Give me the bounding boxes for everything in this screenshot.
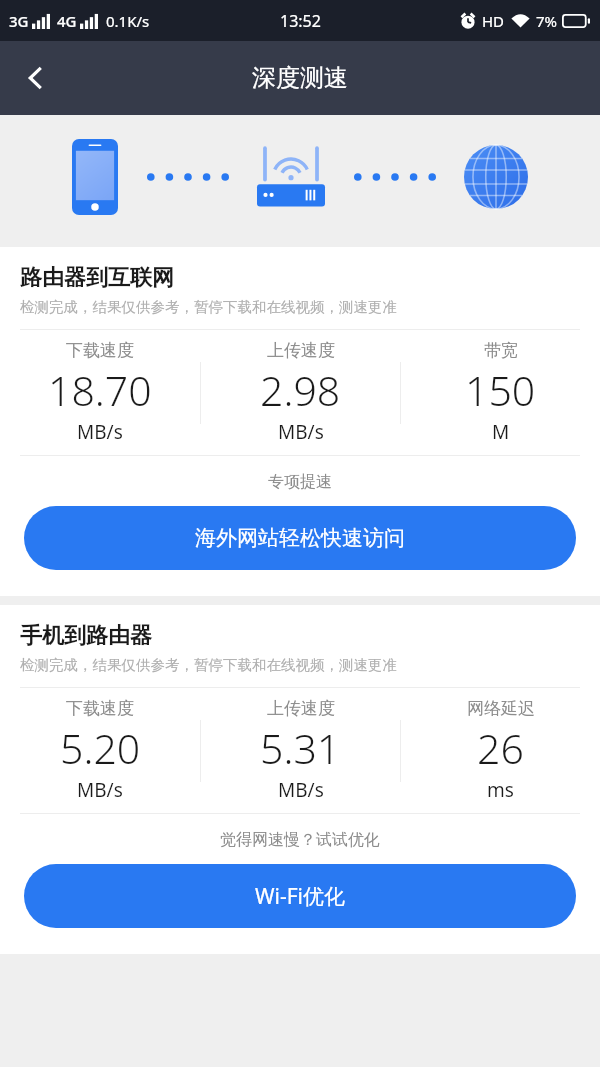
staticText: 下载速度 <box>66 698 134 719</box>
staticText: 5.20 <box>60 720 141 776</box>
staticText: MB/s <box>77 777 123 803</box>
button[interactable]: 海外网站轻松快速访问 <box>24 506 576 570</box>
staticText: 4G <box>57 11 77 31</box>
staticText: HD <box>482 11 505 31</box>
staticText: 7% <box>536 11 558 31</box>
staticText: 0.1K/s <box>106 11 150 31</box>
staticText: Wi-Fi优化 <box>255 882 346 911</box>
staticText: 26 <box>477 720 524 776</box>
staticText: 觉得网速慢？试试优化 <box>0 830 600 850</box>
staticText: 检测完成，结果仅供参考，暂停下载和在线视频，测速更准 <box>20 656 397 674</box>
staticText: 路由器到互联网 <box>20 264 174 292</box>
staticText: 5.31 <box>260 720 341 776</box>
staticText: 网络延迟 <box>467 698 535 719</box>
staticText: 深度测速 <box>252 63 348 93</box>
staticText: ms <box>487 777 514 803</box>
staticText: 下载速度 <box>66 340 134 361</box>
staticText: 上传速度 <box>267 698 335 719</box>
staticText: MB/s <box>278 419 324 445</box>
staticText: 2.98 <box>260 362 341 418</box>
staticText: 海外网站轻松快速访问 <box>195 525 405 551</box>
staticText: 150 <box>465 362 536 418</box>
staticText: 带宽 <box>484 340 518 361</box>
staticText: 手机到路由器 <box>20 622 152 650</box>
staticText: MB/s <box>278 777 324 803</box>
staticText: 检测完成，结果仅供参考，暂停下载和在线视频，测速更准 <box>20 298 397 316</box>
staticText: 18.70 <box>48 362 152 418</box>
staticText: M <box>492 419 510 445</box>
staticText: 3G <box>9 11 29 31</box>
staticText: 专项提速 <box>0 472 600 492</box>
staticText: 13:52 <box>280 10 321 32</box>
staticText: MB/s <box>77 419 123 445</box>
button[interactable]: Wi-Fi优化 <box>24 864 576 928</box>
staticText: 上传速度 <box>267 340 335 361</box>
button[interactable]: Back <box>6 48 66 108</box>
